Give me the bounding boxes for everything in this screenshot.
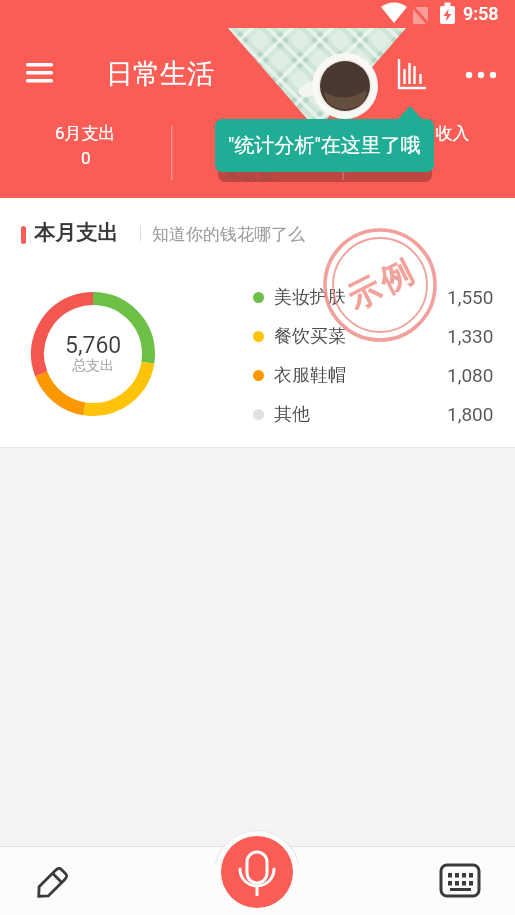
button[interactable]: "统计分析"在这里了哦 (215, 119, 434, 172)
button[interactable] (31, 856, 79, 904)
staticText: 6月支出 (55, 123, 116, 144)
button[interactable]: 美妆护肤 (253, 283, 494, 311)
staticText: 1,330 (447, 325, 494, 347)
staticText: 6月收入 (409, 123, 470, 144)
staticText: 1,550 (447, 286, 494, 308)
button[interactable] (18, 52, 62, 96)
staticText: 月预算 (232, 123, 283, 144)
staticText: 示例 (339, 251, 421, 319)
staticText: 9:58 (463, 3, 499, 24)
staticText: 总支出 (72, 357, 114, 375)
staticText: "统计分析"在这里了哦 (228, 133, 421, 158)
staticText: 未设置 (232, 148, 283, 169)
staticText: 知道你的钱花哪了么 (152, 224, 305, 245)
button[interactable] (458, 52, 502, 96)
staticText: 1,080 (447, 364, 494, 386)
staticText: 其他 (274, 403, 310, 426)
staticText: 未设置 (224, 163, 275, 184)
staticText: 0 (81, 148, 91, 168)
staticText: 5,760 (65, 332, 122, 359)
staticText: 餐饮买菜 (274, 325, 346, 348)
staticText: 1,800 (447, 403, 494, 425)
staticText: 美妆护肤 (274, 286, 346, 309)
button[interactable] (390, 52, 434, 96)
button[interactable] (221, 836, 293, 908)
button[interactable]: 其他 (253, 400, 494, 428)
button[interactable] (434, 858, 482, 906)
button[interactable]: 衣服鞋帽 (253, 361, 494, 389)
staticText: 日常生活 (106, 57, 214, 91)
staticText: 本月支出 (34, 220, 118, 246)
button[interactable]: 餐饮买菜 (253, 322, 494, 350)
staticText: 衣服鞋帽 (274, 364, 346, 387)
